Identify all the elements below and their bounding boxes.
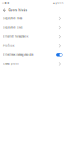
button[interactable]: Értesített felhasználók [0,32,65,41]
staticText: ▮ [55,2,56,4]
staticText: Csend profil [3,62,19,65]
staticText: ■ [5,2,7,5]
button[interactable]: Back [3,8,6,12]
staticText: Gyors hívás [8,8,27,12]
staticText: Segélyhívó SMS [3,26,23,29]
button[interactable]: Segélyhívó SMS [0,23,65,32]
button[interactable]: Profilok [0,41,65,50]
staticText: Értesítések jóváhagyása után [3,53,33,56]
staticText: ● [7,2,9,5]
staticText: ✉ [2,2,4,4]
staticText: 12:05 [57,2,63,5]
staticText: Értesített felhasználók [3,35,28,38]
button[interactable]: Segélyhívó hívás [0,14,65,23]
staticText: Segélyhívó hívás [3,17,22,20]
staticText: ▲ [53,2,55,5]
button[interactable]: Csend profil [0,59,65,68]
staticText: Profilok [3,44,14,47]
button[interactable]: Értesítések jóváhagyása után [0,50,65,59]
